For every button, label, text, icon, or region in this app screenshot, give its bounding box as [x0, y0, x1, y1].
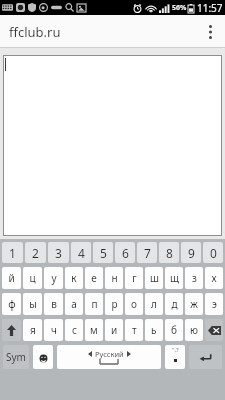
staticText: и: [111, 323, 118, 337]
staticText: ь: [151, 323, 157, 337]
button[interactable]: ш: [145, 267, 163, 289]
staticText: е: [91, 271, 97, 285]
button[interactable]: 2: [25, 242, 46, 263]
staticText: 6: [122, 245, 129, 261]
button[interactable]: х: [205, 267, 223, 289]
staticText: 8: [166, 245, 173, 261]
staticText: ы: [29, 297, 37, 311]
staticText: ю: [190, 323, 198, 337]
button[interactable]: 3: [48, 242, 69, 263]
staticText: 11:57: [197, 1, 223, 15]
button[interactable]: 9: [181, 242, 201, 263]
staticText: ж: [190, 297, 198, 311]
staticText: р: [111, 297, 118, 311]
staticText: 5: [100, 245, 107, 261]
button[interactable]: ffclub.ru: [9, 23, 61, 41]
button[interactable]: щ: [165, 267, 183, 289]
button[interactable]: Backspace: [205, 319, 223, 341]
staticText: з: [192, 271, 197, 285]
button[interactable]: у: [44, 267, 63, 289]
button[interactable]: 4: [71, 242, 91, 263]
staticText: 0: [210, 245, 217, 261]
button[interactable]: д: [165, 293, 183, 315]
button[interactable]: е: [85, 267, 103, 289]
staticText: л: [151, 297, 157, 311]
staticText: 7: [144, 245, 151, 261]
staticText: ч: [51, 323, 57, 337]
staticText: г: [132, 271, 137, 285]
staticText: ffclub.ru: [9, 23, 61, 41]
staticText: 4: [78, 245, 85, 261]
button[interactable]: ч: [44, 319, 63, 341]
button[interactable]: 1: [2, 242, 23, 263]
button[interactable]: Enter: [189, 345, 222, 369]
staticText: 1: [9, 245, 16, 261]
staticText: у: [51, 271, 57, 285]
staticText: о: [131, 297, 137, 311]
button[interactable]: в: [44, 293, 63, 315]
button[interactable]: 5: [93, 242, 113, 263]
button[interactable]: Emoji: [33, 345, 53, 369]
staticText: т: [132, 323, 137, 337]
button[interactable]: о: [125, 293, 143, 315]
staticText: ц: [29, 271, 36, 285]
staticText: э: [212, 297, 217, 311]
staticText: 9: [188, 245, 195, 261]
button[interactable]: л: [145, 293, 163, 315]
button[interactable]: к: [65, 267, 83, 289]
button[interactable]: 8: [159, 242, 179, 263]
button[interactable]: ц: [23, 267, 42, 289]
button[interactable]: я: [23, 319, 42, 341]
staticText: с: [72, 323, 77, 337]
button[interactable]: с: [65, 319, 83, 341]
staticText: а: [71, 297, 77, 311]
button[interactable]: More options: [195, 15, 225, 48]
button[interactable]: м: [85, 319, 103, 341]
button[interactable]: б: [165, 319, 183, 341]
button[interactable]: 0: [203, 242, 223, 263]
staticText: Sym: [6, 350, 26, 364]
button[interactable]: ь: [145, 319, 163, 341]
staticText: ",?: [172, 346, 179, 354]
staticText: я: [30, 323, 36, 337]
staticText: 56%: [172, 3, 187, 13]
button[interactable]: а: [65, 293, 83, 315]
staticText: б: [171, 323, 177, 337]
button[interactable]: э: [205, 293, 223, 315]
staticText: п: [91, 297, 98, 311]
button[interactable]: 7: [137, 242, 157, 263]
button[interactable]: ф: [2, 293, 21, 315]
button[interactable]: 6: [115, 242, 135, 263]
staticText: д: [171, 297, 178, 311]
button[interactable]: н: [105, 267, 123, 289]
button[interactable]: ж: [185, 293, 203, 315]
button[interactable]: ",?: [165, 345, 185, 369]
staticText: м: [90, 323, 98, 337]
button[interactable]: т: [125, 319, 143, 341]
button[interactable]: р: [105, 293, 123, 315]
button[interactable]: з: [185, 267, 203, 289]
staticText: х: [211, 271, 217, 285]
staticText: й: [8, 271, 15, 285]
button[interactable]: п: [85, 293, 103, 315]
staticText: ш: [150, 271, 159, 285]
staticText: Русский: [95, 349, 124, 359]
staticText: в: [51, 297, 57, 311]
staticText: к: [71, 271, 77, 285]
button[interactable]: Shift: [2, 319, 21, 341]
button[interactable]: Sym: [3, 345, 29, 369]
staticText: ф: [8, 297, 16, 311]
button[interactable]: Space: [57, 345, 161, 369]
staticText: щ: [170, 271, 179, 285]
button[interactable]: й: [2, 267, 21, 289]
button[interactable]: ы: [23, 293, 42, 315]
staticText: н: [111, 271, 118, 285]
button[interactable]: и: [105, 319, 123, 341]
button[interactable]: г: [125, 267, 143, 289]
staticText: 3: [55, 245, 62, 261]
button[interactable]: ю: [185, 319, 203, 341]
staticText: 2: [32, 245, 39, 261]
